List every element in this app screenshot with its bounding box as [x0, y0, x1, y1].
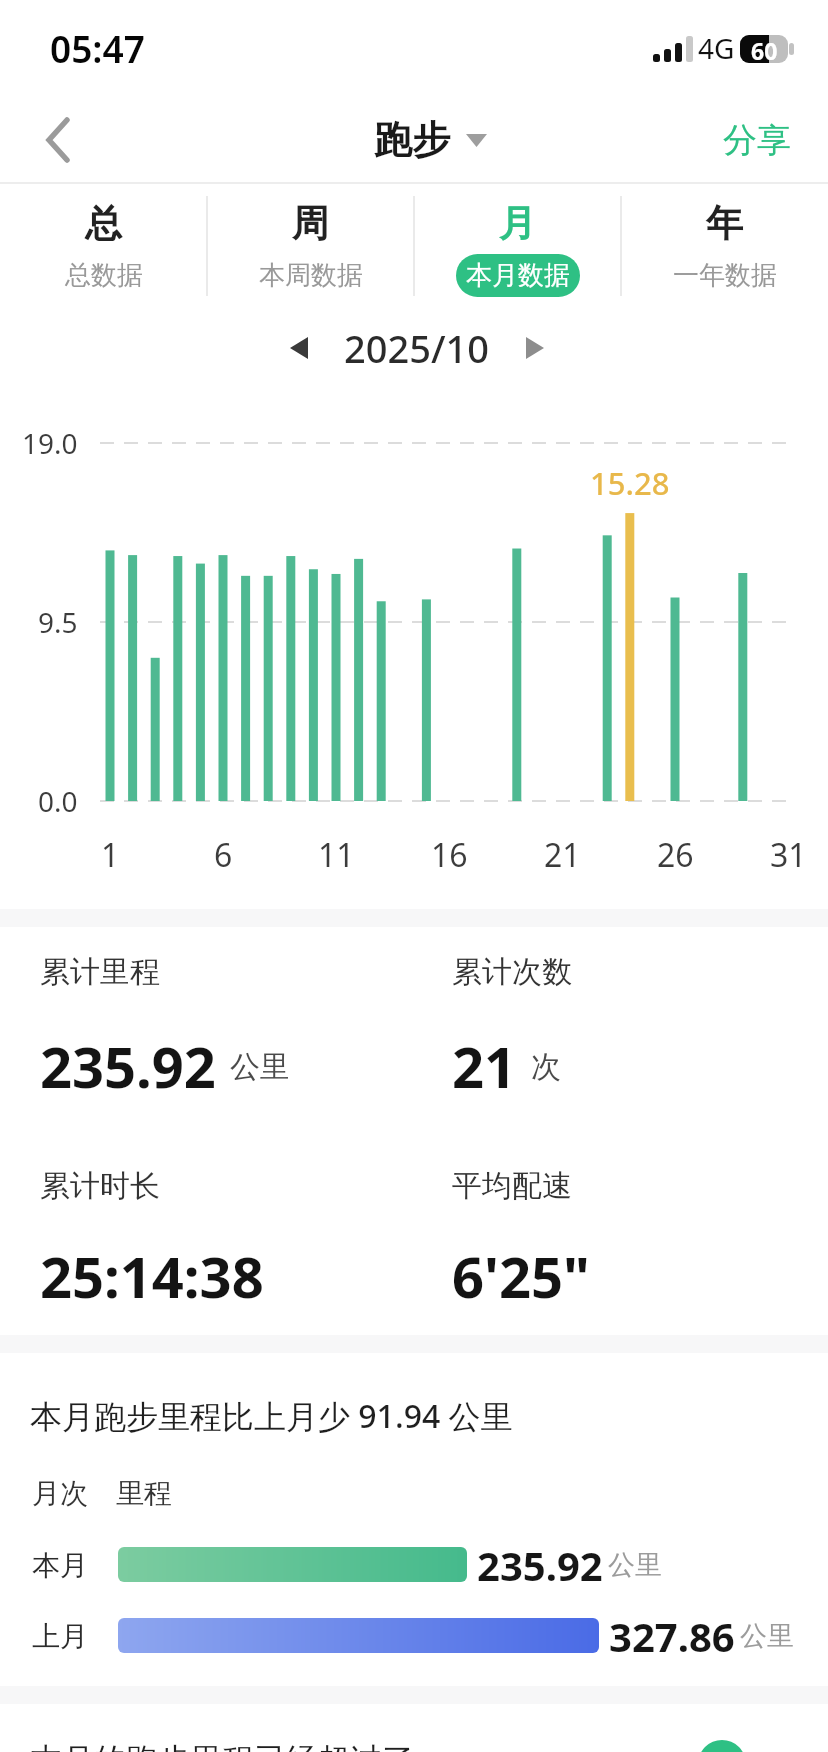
staticText: 11 [318, 833, 355, 877]
staticText: 总 [85, 200, 122, 247]
staticText: 总数据 [65, 259, 143, 292]
staticText: 本周数据 [259, 259, 363, 292]
staticText: 60 [751, 35, 778, 63]
button[interactable] [0, 1608, 828, 1664]
staticText: 26 [657, 833, 694, 877]
staticText: 05:47 [50, 23, 145, 73]
staticText: 平均配速 [452, 1167, 572, 1205]
staticText: 月次 [32, 1476, 88, 1511]
staticText: 次 [531, 1048, 561, 1086]
staticText: 235.92 [40, 1028, 216, 1094]
staticText: 本月数据 [466, 259, 570, 292]
staticText: 327.86 [609, 1609, 735, 1663]
staticText: 15.28 [590, 462, 670, 498]
staticText: 6'25" [452, 1238, 590, 1304]
staticText: 本月跑步里程比上月少 91.94 公里 [30, 1394, 513, 1438]
staticText: 2025/10 [344, 322, 490, 374]
button[interactable]: 总 [0, 192, 207, 300]
button[interactable]: 周 [207, 192, 414, 300]
button[interactable] [0, 1537, 828, 1593]
staticText: 21 [544, 833, 581, 877]
button[interactable] [28, 104, 88, 176]
staticText: 跑步 [374, 116, 450, 164]
staticText: 31 [770, 833, 807, 877]
staticText: 21 [452, 1028, 517, 1094]
staticText: 6 [214, 833, 233, 877]
staticText: 4G [698, 29, 735, 67]
button[interactable]: 本月的跑步里程已经超过了 [30, 1738, 414, 1752]
staticText: 本月的跑步里程已经超过了 [30, 1740, 414, 1752]
staticText: 16 [431, 833, 468, 877]
staticText: 25:14:38 [40, 1238, 264, 1304]
button[interactable]: 月 [414, 192, 621, 300]
staticText: 公里 [740, 1619, 794, 1653]
staticText: 235.92 [477, 1538, 603, 1592]
staticText: 累计次数 [452, 953, 572, 991]
staticText: 0.0 [38, 782, 78, 820]
staticText: 1 [101, 833, 120, 877]
staticText: 公里 [608, 1548, 662, 1582]
staticText: 里程 [116, 1476, 172, 1511]
button[interactable]: 年 [621, 192, 828, 300]
button[interactable]: 2025/10 [290, 322, 544, 374]
staticText: 累计里程 [40, 953, 160, 991]
staticText: 周 [292, 200, 329, 247]
button[interactable]: 跑步 [374, 108, 487, 172]
button[interactable]: 分享 [712, 108, 802, 172]
staticText: 19.0 [22, 424, 78, 462]
staticText: 年 [706, 200, 743, 247]
staticText: 公里 [230, 1048, 290, 1086]
staticText: 分享 [723, 119, 791, 162]
staticText: 9.5 [38, 603, 78, 641]
staticText: 累计时长 [40, 1167, 160, 1205]
staticText: 上月 [32, 1619, 88, 1654]
staticText: 月 [499, 200, 536, 247]
staticText: 一年数据 [673, 259, 777, 292]
staticText: 本月 [32, 1548, 88, 1583]
